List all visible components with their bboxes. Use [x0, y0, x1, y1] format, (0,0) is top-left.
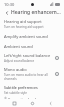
staticText: Turn on mono audio to hear all channels [4, 73, 48, 81]
staticText: Adjust sound balance [4, 59, 35, 63]
button[interactable]: Mono audio [0, 65, 64, 83]
button[interactable]: Back [46, 99, 54, 107]
button[interactable]: Recents [10, 99, 18, 107]
button[interactable]: Home [28, 99, 36, 107]
button[interactable]: Hearing aid support [0, 17, 64, 31]
button[interactable]: Back [3, 9, 10, 16]
staticText: Amplify ambient sound [4, 34, 48, 39]
button[interactable]: Amplify ambient sound [0, 32, 64, 41]
staticText: Hearing aid support [4, 19, 42, 24]
button[interactable]: Settings [54, 71, 60, 77]
staticText: Hearing enhancements [11, 9, 61, 16]
staticText: Turn on hearing aid support [4, 25, 44, 29]
button[interactable]: Left/right sound balance [0, 51, 64, 65]
staticText: Left/right sound balance [4, 53, 51, 58]
staticText: Ambient sound [4, 44, 33, 49]
button[interactable]: Settings [54, 55, 60, 61]
staticText: Mono audio [4, 67, 27, 72]
staticText: Set subtitle style [4, 91, 28, 95]
staticText: Connection levels [8, 97, 38, 99]
button[interactable]: Ambient sound [0, 42, 64, 51]
staticText: Subtitle preferences [4, 85, 38, 90]
staticText: 10:30 [4, 2, 15, 7]
